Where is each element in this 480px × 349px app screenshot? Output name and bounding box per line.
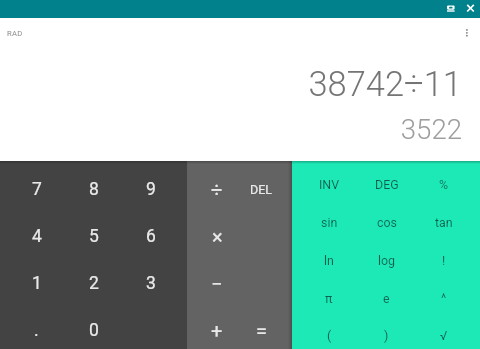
staticText: + bbox=[211, 319, 223, 342]
staticText: sin bbox=[321, 215, 338, 230]
staticText: 7 bbox=[32, 179, 42, 200]
button[interactable]: = bbox=[239, 307, 284, 349]
staticText: 1 bbox=[32, 273, 42, 294]
button[interactable]: . bbox=[8, 307, 65, 349]
staticText: 3 bbox=[146, 273, 156, 294]
staticText: 0 bbox=[89, 320, 99, 341]
staticText: DEL bbox=[250, 182, 273, 197]
button[interactable]: 4 bbox=[8, 213, 65, 260]
button[interactable]: log bbox=[358, 241, 415, 279]
staticText: = bbox=[256, 319, 267, 342]
button[interactable]: 6 bbox=[122, 213, 179, 260]
button[interactable]: More options bbox=[456, 23, 476, 43]
button[interactable]: tan bbox=[415, 203, 472, 241]
button[interactable]: INV bbox=[300, 165, 358, 203]
staticText: DEG bbox=[375, 177, 399, 192]
staticText: 3522 bbox=[400, 113, 462, 145]
button[interactable]: ln bbox=[300, 241, 358, 279]
staticText: RAD bbox=[7, 29, 23, 38]
staticText: tan bbox=[435, 215, 453, 230]
button[interactable]: ( bbox=[300, 317, 358, 349]
staticText: ^ bbox=[441, 291, 447, 306]
button[interactable]: − bbox=[195, 260, 239, 307]
button[interactable]: Restore window bbox=[440, 0, 461, 18]
button[interactable]: π bbox=[300, 279, 358, 317]
staticText: . bbox=[34, 320, 39, 341]
button[interactable]: 1 bbox=[8, 260, 65, 307]
button[interactable]: % bbox=[415, 165, 472, 203]
staticText: e bbox=[383, 291, 390, 306]
button[interactable]: ! bbox=[415, 241, 472, 279]
staticText: ÷ bbox=[211, 178, 223, 201]
staticText: 8 bbox=[89, 179, 99, 200]
button[interactable]: 3 bbox=[122, 260, 179, 307]
button[interactable]: √ bbox=[415, 317, 472, 349]
staticText: 9 bbox=[146, 179, 156, 200]
staticText: 4 bbox=[32, 226, 42, 247]
staticText: ) bbox=[384, 328, 389, 343]
button[interactable]: ÷ bbox=[195, 166, 239, 213]
staticText: ( bbox=[327, 328, 332, 343]
staticText: π bbox=[325, 291, 333, 306]
staticText: ! bbox=[442, 253, 446, 268]
button[interactable]: 8 bbox=[65, 166, 122, 213]
button[interactable]: + bbox=[195, 307, 239, 349]
button[interactable]: 7 bbox=[8, 166, 65, 213]
staticText: √ bbox=[440, 328, 448, 343]
button[interactable]: Close window bbox=[461, 0, 480, 18]
button[interactable]: e bbox=[358, 279, 415, 317]
staticText: 6 bbox=[146, 226, 156, 247]
button[interactable]: 0 bbox=[65, 307, 122, 349]
button[interactable]: × bbox=[195, 213, 239, 260]
button[interactable]: ^ bbox=[415, 279, 472, 317]
button[interactable]: DEG bbox=[358, 165, 415, 203]
staticText: ln bbox=[324, 253, 334, 268]
staticText: 2 bbox=[89, 273, 99, 294]
button[interactable]: DEL bbox=[239, 166, 284, 213]
staticText: INV bbox=[319, 177, 340, 192]
staticText: cos bbox=[377, 215, 397, 230]
staticText: 38742÷11 bbox=[308, 64, 462, 104]
staticText: − bbox=[211, 272, 223, 295]
staticText: × bbox=[212, 225, 223, 248]
button[interactable]: 5 bbox=[65, 213, 122, 260]
button[interactable]: 2 bbox=[65, 260, 122, 307]
button[interactable]: cos bbox=[358, 203, 415, 241]
staticText: log bbox=[378, 253, 396, 268]
button[interactable]: ) bbox=[358, 317, 415, 349]
button[interactable]: 9 bbox=[122, 166, 179, 213]
button[interactable]: sin bbox=[300, 203, 358, 241]
staticText: 5 bbox=[89, 226, 99, 247]
staticText: % bbox=[439, 177, 449, 192]
